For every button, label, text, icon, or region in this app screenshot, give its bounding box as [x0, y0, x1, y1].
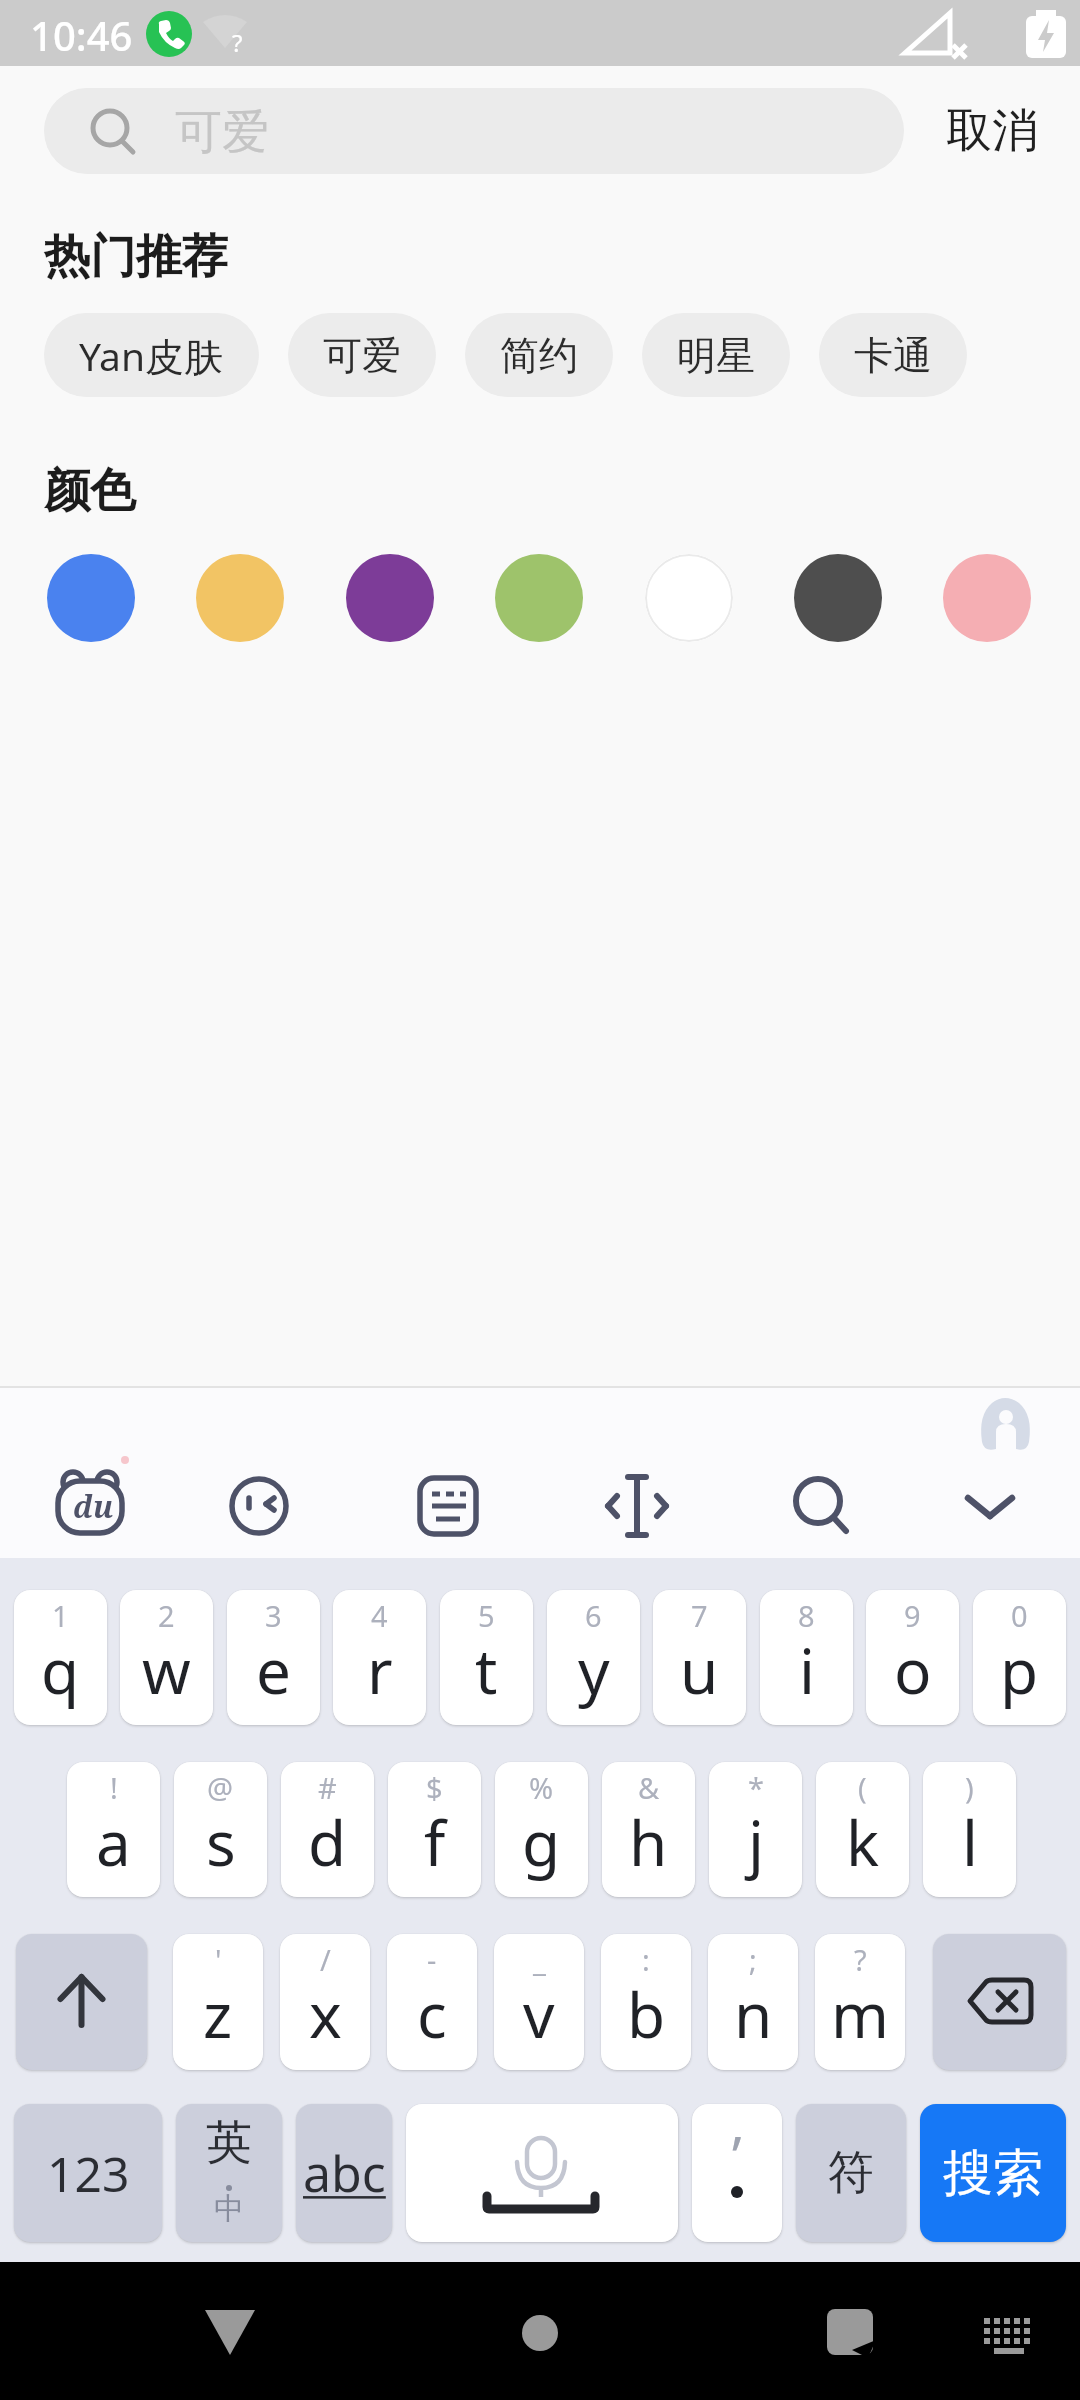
- staticText: %: [529, 1768, 554, 1807]
- staticText: d: [308, 1800, 347, 1884]
- button[interactable]: /: [280, 1934, 370, 2070]
- button[interactable]: -: [387, 1934, 477, 2070]
- button[interactable]: [50, 1466, 130, 1546]
- button[interactable]: ’: [692, 2104, 782, 2242]
- staticText: e: [256, 1628, 291, 1712]
- button[interactable]: [933, 1934, 1066, 2070]
- staticText: &: [638, 1768, 660, 1807]
- staticText: #: [318, 1768, 337, 1807]
- button[interactable]: 取消: [946, 88, 1038, 174]
- button[interactable]: ;: [708, 1934, 798, 2070]
- button[interactable]: @: [174, 1762, 267, 1897]
- staticText: y: [578, 1628, 610, 1712]
- staticText: 8: [798, 1596, 815, 1635]
- button[interactable]: 7: [653, 1590, 746, 1725]
- staticText: x: [309, 1972, 342, 2056]
- button[interactable]: ': [173, 1934, 263, 2070]
- button[interactable]: 123: [14, 2104, 162, 2242]
- button[interactable]: 3: [227, 1590, 320, 1725]
- button[interactable]: [794, 554, 882, 642]
- button[interactable]: 搜索: [920, 2104, 1066, 2242]
- button[interactable]: [346, 554, 434, 642]
- button[interactable]: *: [709, 1762, 802, 1897]
- button[interactable]: %: [495, 1762, 588, 1897]
- staticText: ?: [854, 1940, 867, 1979]
- button[interactable]: 0: [973, 1590, 1066, 1725]
- staticText: z: [203, 1972, 233, 2056]
- button[interactable]: 可爱: [288, 313, 436, 397]
- button[interactable]: 符: [796, 2104, 906, 2242]
- staticText: 可爱: [175, 103, 269, 162]
- button[interactable]: 明星: [642, 313, 790, 397]
- staticText: 10:46: [30, 8, 133, 62]
- button[interactable]: [185, 2292, 275, 2372]
- staticText: t: [475, 1628, 498, 1712]
- button[interactable]: [408, 1466, 488, 1546]
- button[interactable]: abc: [296, 2104, 392, 2242]
- button[interactable]: [597, 1466, 677, 1546]
- button[interactable]: ): [923, 1762, 1016, 1897]
- staticText: v: [523, 1972, 555, 2056]
- staticText: (: [858, 1768, 867, 1807]
- button[interactable]: 1: [14, 1590, 107, 1725]
- button[interactable]: [950, 1466, 1030, 1546]
- button[interactable]: [805, 2292, 895, 2372]
- button[interactable]: ?: [815, 1934, 905, 2070]
- button[interactable]: 可爱: [44, 88, 904, 174]
- staticText: 4: [371, 1596, 388, 1635]
- button[interactable]: [495, 554, 583, 642]
- button[interactable]: !: [67, 1762, 160, 1897]
- button[interactable]: (: [816, 1762, 909, 1897]
- button[interactable]: 英: [176, 2104, 282, 2242]
- button[interactable]: [495, 2292, 585, 2372]
- staticText: *: [748, 1768, 764, 1807]
- button[interactable]: 8: [760, 1590, 853, 1725]
- button[interactable]: [196, 554, 284, 642]
- staticText: a: [96, 1800, 131, 1884]
- button[interactable]: [16, 1934, 147, 2070]
- staticText: 卡通: [854, 331, 932, 380]
- button[interactable]: &: [602, 1762, 695, 1897]
- staticText: 搜索: [943, 2142, 1043, 2205]
- button[interactable]: $: [388, 1762, 481, 1897]
- button[interactable]: 卡通: [819, 313, 967, 397]
- button[interactable]: 简约: [465, 313, 613, 397]
- staticText: 5: [478, 1596, 495, 1635]
- button[interactable]: [645, 554, 733, 642]
- button[interactable]: [943, 554, 1031, 642]
- staticText: 7: [691, 1596, 708, 1635]
- staticText: s: [206, 1800, 236, 1884]
- staticText: ): [965, 1768, 974, 1807]
- staticText: o: [894, 1628, 932, 1712]
- staticText: 简约: [500, 331, 578, 380]
- staticText: f: [424, 1800, 446, 1884]
- staticText: 3: [265, 1596, 282, 1635]
- staticText: 6: [585, 1596, 602, 1635]
- staticText: 中: [214, 2190, 244, 2228]
- button[interactable]: _: [494, 1934, 584, 2070]
- button[interactable]: [219, 1466, 299, 1546]
- staticText: abc: [303, 2139, 386, 2207]
- staticText: 热门推荐: [44, 228, 228, 286]
- button[interactable]: #: [281, 1762, 374, 1897]
- staticText: /: [320, 1940, 331, 1979]
- button[interactable]: Yan皮肤: [44, 313, 259, 397]
- button[interactable]: [960, 2292, 1050, 2372]
- button[interactable]: 4: [333, 1590, 426, 1725]
- staticText: r: [367, 1628, 393, 1712]
- staticText: 2: [158, 1596, 175, 1635]
- button[interactable]: 9: [866, 1590, 959, 1725]
- button[interactable]: [47, 554, 135, 642]
- staticText: 可爱: [323, 331, 401, 380]
- staticText: 123: [47, 2141, 130, 2206]
- button[interactable]: :: [601, 1934, 691, 2070]
- staticText: ;: [749, 1940, 757, 1979]
- button[interactable]: [406, 2104, 678, 2242]
- button[interactable]: 6: [547, 1590, 640, 1725]
- button[interactable]: 5: [440, 1590, 533, 1725]
- staticText: 0: [1011, 1596, 1028, 1635]
- staticText: q: [41, 1628, 80, 1712]
- button[interactable]: 2: [120, 1590, 213, 1725]
- button[interactable]: [782, 1466, 862, 1546]
- staticText: !: [110, 1768, 118, 1807]
